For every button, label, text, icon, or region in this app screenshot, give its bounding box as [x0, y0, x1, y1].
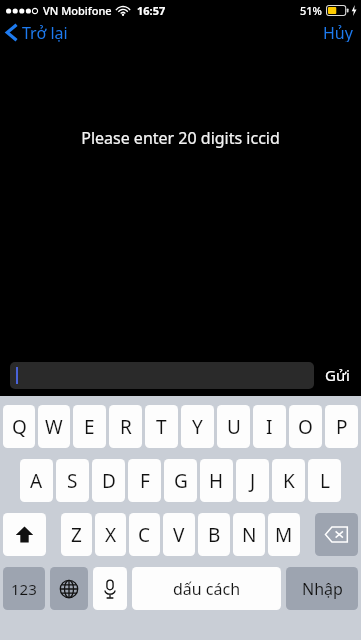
button[interactable]: V — [163, 513, 195, 556]
button[interactable]: M — [268, 513, 300, 556]
button[interactable]: S — [56, 459, 89, 502]
staticText: M — [275, 522, 293, 548]
staticText: G — [174, 468, 188, 494]
button[interactable]: L — [308, 459, 341, 502]
staticText: V — [173, 522, 185, 548]
button[interactable]: Q — [3, 405, 35, 448]
staticText: F — [140, 468, 150, 494]
button[interactable]: J — [236, 459, 269, 502]
button[interactable]: dấu cách — [132, 567, 281, 610]
staticText: I — [266, 414, 273, 440]
button[interactable]: C — [129, 513, 160, 556]
button[interactable]: G — [164, 459, 197, 502]
staticText: E — [84, 414, 95, 440]
staticText: P — [336, 414, 348, 440]
staticText: U — [227, 414, 241, 440]
staticText: 16:57 — [137, 3, 166, 18]
button[interactable]: N — [233, 513, 265, 556]
staticText: O — [298, 414, 313, 440]
button[interactable]: Y — [181, 405, 214, 448]
staticText: K — [283, 468, 295, 494]
button[interactable]: T — [145, 405, 178, 448]
button[interactable]: Dictation — [93, 567, 127, 610]
staticText: Y — [192, 414, 203, 440]
staticText: Please enter 20 digits iccid — [0, 127, 361, 149]
button[interactable] — [10, 362, 314, 389]
button[interactable]: Gửi — [314, 359, 361, 391]
button[interactable]: E — [73, 405, 106, 448]
button[interactable]: O — [289, 405, 322, 448]
button[interactable]: X — [95, 513, 126, 556]
staticText: 123 — [11, 579, 37, 599]
button[interactable]: K — [272, 459, 305, 502]
staticText: D — [102, 468, 116, 494]
button[interactable]: Change keyboard language — [50, 567, 88, 610]
button[interactable]: F — [128, 459, 161, 502]
button[interactable]: Nhập — [286, 567, 358, 610]
staticText: Q — [12, 414, 27, 440]
button[interactable]: H — [200, 459, 233, 502]
staticText: W — [45, 414, 63, 440]
button[interactable]: Z — [61, 513, 92, 556]
staticText: Z — [71, 522, 82, 548]
staticText: dấu cách — [173, 578, 241, 600]
button[interactable]: Shift — [3, 513, 46, 556]
button[interactable]: U — [217, 405, 250, 448]
staticText: H — [209, 468, 224, 494]
button[interactable]: B — [198, 513, 230, 556]
button[interactable]: W — [38, 405, 70, 448]
button[interactable]: Hủy — [313, 20, 361, 44]
staticText: Hủy — [323, 22, 353, 42]
button[interactable]: Trở lại — [0, 20, 76, 44]
button[interactable]: 123 — [3, 567, 45, 610]
staticText: C — [138, 522, 151, 548]
staticText: A — [30, 468, 43, 494]
staticText: VN Mobifone — [43, 3, 112, 18]
staticText: Gửi — [325, 365, 350, 385]
staticText: Trở lại — [22, 22, 68, 42]
button[interactable]: A — [20, 459, 53, 502]
button[interactable]: R — [109, 405, 142, 448]
staticText: S — [67, 468, 78, 494]
staticText: J — [250, 468, 256, 494]
staticText: X — [105, 522, 117, 548]
button[interactable]: Backspace — [315, 513, 358, 556]
staticText: Nhập — [302, 578, 343, 600]
button[interactable]: I — [253, 405, 286, 448]
staticText: T — [156, 414, 167, 440]
button[interactable]: P — [325, 405, 358, 448]
staticText: 51% — [300, 3, 322, 18]
staticText: B — [208, 522, 221, 548]
button[interactable]: D — [92, 459, 125, 502]
staticText: N — [242, 522, 257, 548]
staticText: L — [320, 468, 330, 494]
staticText: R — [120, 414, 132, 440]
